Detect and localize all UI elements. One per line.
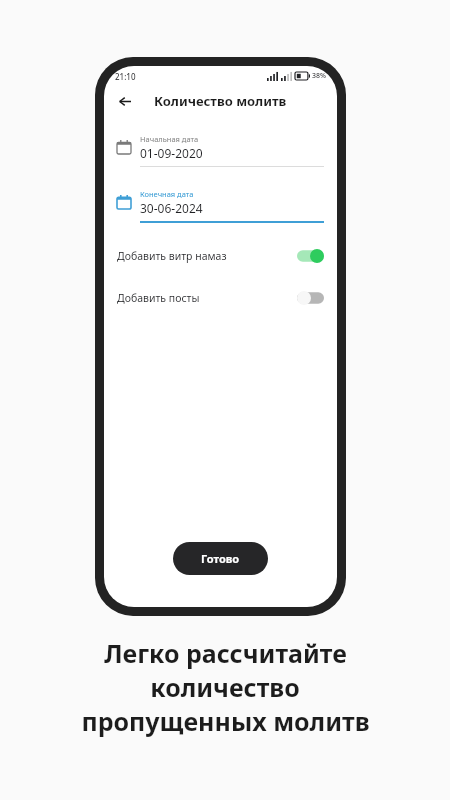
staticText: Добавить витр намаз: [117, 249, 227, 263]
staticText: Добавить посты: [117, 291, 200, 305]
staticText: 01-09-2020: [140, 145, 203, 161]
staticText: Начальная дата: [140, 134, 199, 144]
staticText: Количество молитв: [154, 92, 287, 110]
staticText: Легко рассчитайте: [104, 636, 347, 670]
button[interactable]: Back: [111, 88, 137, 114]
staticText: 21:10: [115, 71, 136, 82]
button[interactable]: Добавить витр намаз: [117, 241, 324, 271]
staticText: количество: [150, 670, 300, 704]
staticText: Конечная дата: [140, 189, 194, 199]
button[interactable]: Начальная дата: [117, 134, 324, 167]
staticText: Готово: [201, 551, 240, 566]
button[interactable]: Готово: [173, 542, 268, 575]
staticText: 30-06-2024: [140, 200, 203, 216]
button[interactable]: Конечная дата: [117, 189, 324, 223]
button[interactable]: Добавить посты: [117, 283, 324, 313]
staticText: пропущенных молитв: [81, 704, 370, 738]
staticText: 38%: [312, 71, 326, 81]
